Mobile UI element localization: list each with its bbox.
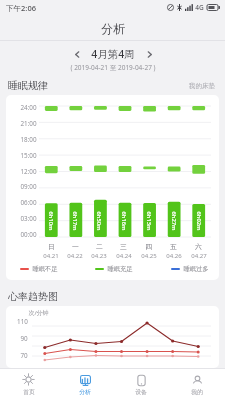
button[interactable]: 我的 [169, 368, 225, 400]
staticText: 70 [20, 351, 28, 360]
staticText: 睡眠充足 [107, 265, 133, 273]
staticText: 分析 [79, 388, 91, 395]
staticText: 04.24 [116, 252, 132, 260]
staticText: 设备 [135, 388, 147, 395]
staticText: 6h17m [71, 211, 79, 231]
staticText: 09:00 [20, 182, 37, 191]
staticText: 15:00 [20, 151, 37, 160]
staticText: 心率趋势图 [8, 290, 58, 303]
staticText: 18:00 [20, 135, 37, 144]
staticText: 04.27 [191, 252, 207, 260]
staticText: 04.23 [91, 252, 107, 260]
button[interactable]: 6h50m [87, 101, 111, 241]
staticText: 4月第4周 [91, 47, 135, 61]
staticText: 五 [170, 242, 177, 251]
staticText: 睡眠过多 [183, 265, 209, 273]
staticText: 04.21 [43, 252, 59, 260]
staticText: 00:00 [20, 230, 37, 239]
staticText: 21:00 [20, 119, 37, 128]
button[interactable]: 设备 [113, 368, 169, 400]
staticText: 110 [17, 317, 28, 326]
staticText: 二 [96, 242, 103, 251]
button[interactable]: 我的床垫 [187, 80, 217, 92]
staticText: 90 [20, 334, 28, 343]
staticText: 次/分钟 [28, 309, 49, 317]
button[interactable]: 6h16m [111, 101, 136, 241]
staticText: 日 [48, 242, 55, 251]
staticText: 睡眠规律 [8, 79, 48, 92]
staticText: 03:00 [20, 214, 37, 223]
staticText: 06:00 [20, 198, 37, 207]
staticText: 六 [195, 242, 202, 251]
button[interactable]: 6h10m [39, 101, 63, 241]
staticText: ( 2019-04-21 至 2019-04-27 ) [70, 63, 156, 72]
staticText: 04.25 [141, 252, 157, 260]
staticText: 我的 [191, 388, 203, 395]
staticText: 04.26 [166, 252, 182, 260]
staticText: 分析 [101, 21, 125, 36]
button[interactable]: Next week [141, 46, 157, 62]
button[interactable]: 首页 [0, 368, 57, 400]
staticText: 睡眠不足 [32, 265, 58, 273]
staticText: 6h16m [120, 211, 128, 231]
button[interactable]: Previous week [69, 46, 85, 62]
staticText: 下午2:06 [6, 3, 36, 13]
staticText: 6h10m [47, 211, 55, 231]
button[interactable]: 分析 [57, 368, 113, 400]
staticText: 首页 [23, 388, 35, 395]
button[interactable]: 6h13m [136, 101, 161, 241]
button[interactable]: 6h02m [186, 101, 211, 241]
staticText: 04.22 [67, 252, 83, 260]
button[interactable]: 6h27m [161, 101, 186, 241]
staticText: 6h02m [195, 211, 203, 231]
staticText: 四 [145, 242, 152, 251]
staticText: 12:00 [20, 167, 37, 176]
staticText: 一 [72, 242, 79, 251]
staticText: 6h50m [95, 211, 103, 231]
button[interactable]: 6h17m [63, 101, 87, 241]
staticText: 三 [120, 242, 127, 251]
staticText: 4G [195, 3, 204, 12]
staticText: 我的床垫 [189, 82, 215, 90]
staticText: 24:00 [20, 103, 37, 112]
staticText: 6h13m [145, 211, 153, 231]
staticText: 6h27m [170, 211, 178, 231]
